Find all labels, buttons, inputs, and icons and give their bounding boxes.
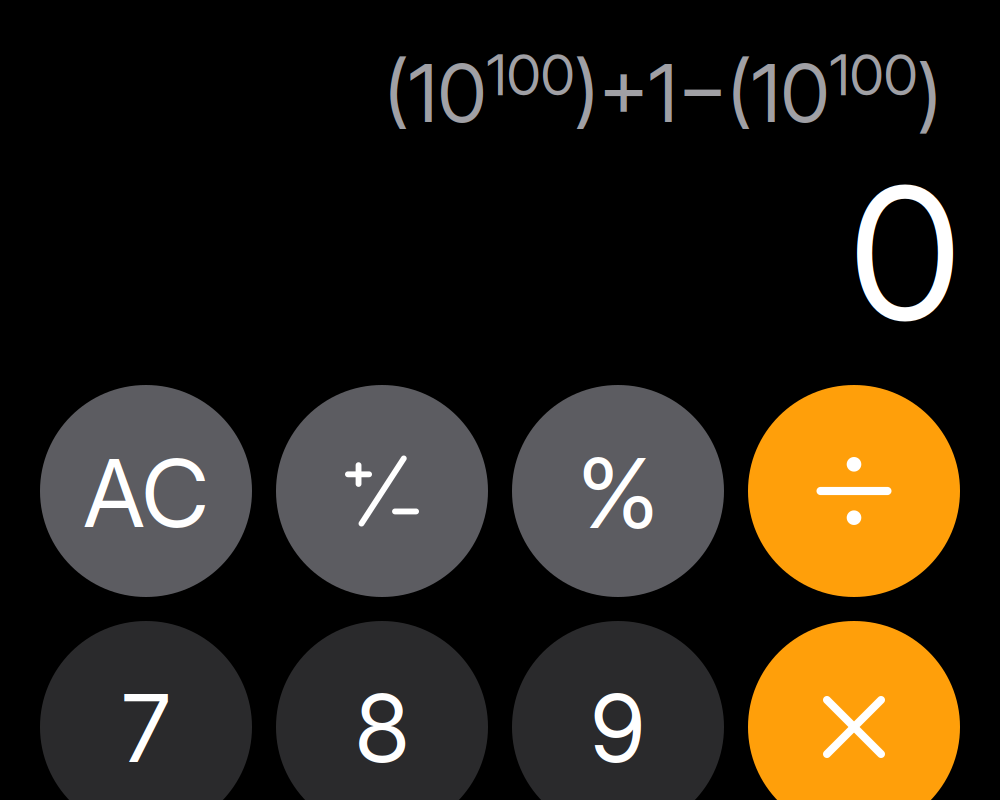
group: (10 <box>384 45 941 141</box>
staticText: 7 <box>122 671 170 784</box>
staticText: ) <box>917 45 941 141</box>
button[interactable]: Percent <box>512 385 724 597</box>
button[interactable]: 9 <box>512 621 724 800</box>
staticText: 0 <box>849 142 961 363</box>
button[interactable]: All Clear <box>40 385 252 597</box>
button[interactable]: Divide <box>748 385 960 597</box>
staticText: 100 <box>486 41 574 109</box>
staticText: AC <box>83 436 208 549</box>
staticText: )+1−(10 <box>574 45 829 141</box>
staticText: 100 <box>829 41 917 109</box>
staticText: (10 <box>384 45 486 141</box>
button[interactable]: 7 <box>40 621 252 800</box>
staticText: % <box>577 435 658 551</box>
staticText: 9 <box>590 671 645 784</box>
staticText: 8 <box>355 671 409 784</box>
button[interactable]: Multiply <box>748 621 960 800</box>
button[interactable]: 8 <box>276 621 488 800</box>
button[interactable]: Positive Negative <box>276 385 488 597</box>
